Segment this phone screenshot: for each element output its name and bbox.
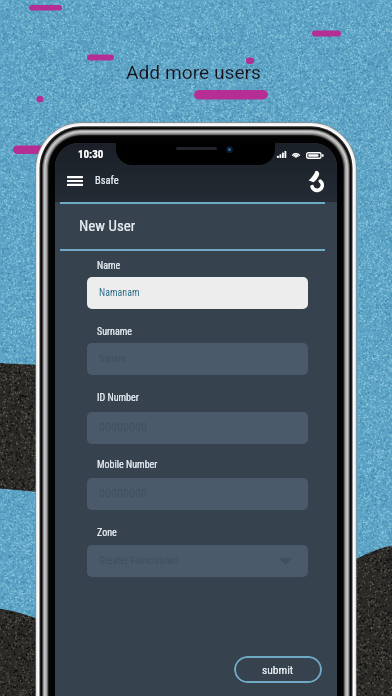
- staticText: 10:30: [78, 148, 104, 161]
- staticText: Add more users: [126, 61, 262, 84]
- staticText: Zone: [97, 527, 117, 539]
- staticText: Greater Francistown: [99, 555, 179, 567]
- button[interactable]: submit: [234, 656, 322, 683]
- button[interactable]: Namanam: [87, 277, 308, 309]
- staticText: ID Number: [97, 392, 139, 404]
- staticText: Mobile Number: [97, 459, 158, 471]
- button[interactable]: Brand logo: [301, 166, 329, 194]
- staticText: New User: [79, 217, 136, 235]
- staticText: Surname: [97, 326, 132, 338]
- staticText: submit: [262, 663, 294, 676]
- button[interactable]: Open navigation menu: [61, 170, 89, 192]
- staticText: OOOOOOOO: [99, 488, 148, 500]
- staticText: Name: [97, 260, 121, 272]
- staticText: OOOOOOOO: [99, 422, 148, 434]
- staticText: Namanam: [99, 287, 140, 299]
- staticText: Bsafe: [95, 174, 119, 186]
- staticText: Sanam: [99, 353, 127, 365]
